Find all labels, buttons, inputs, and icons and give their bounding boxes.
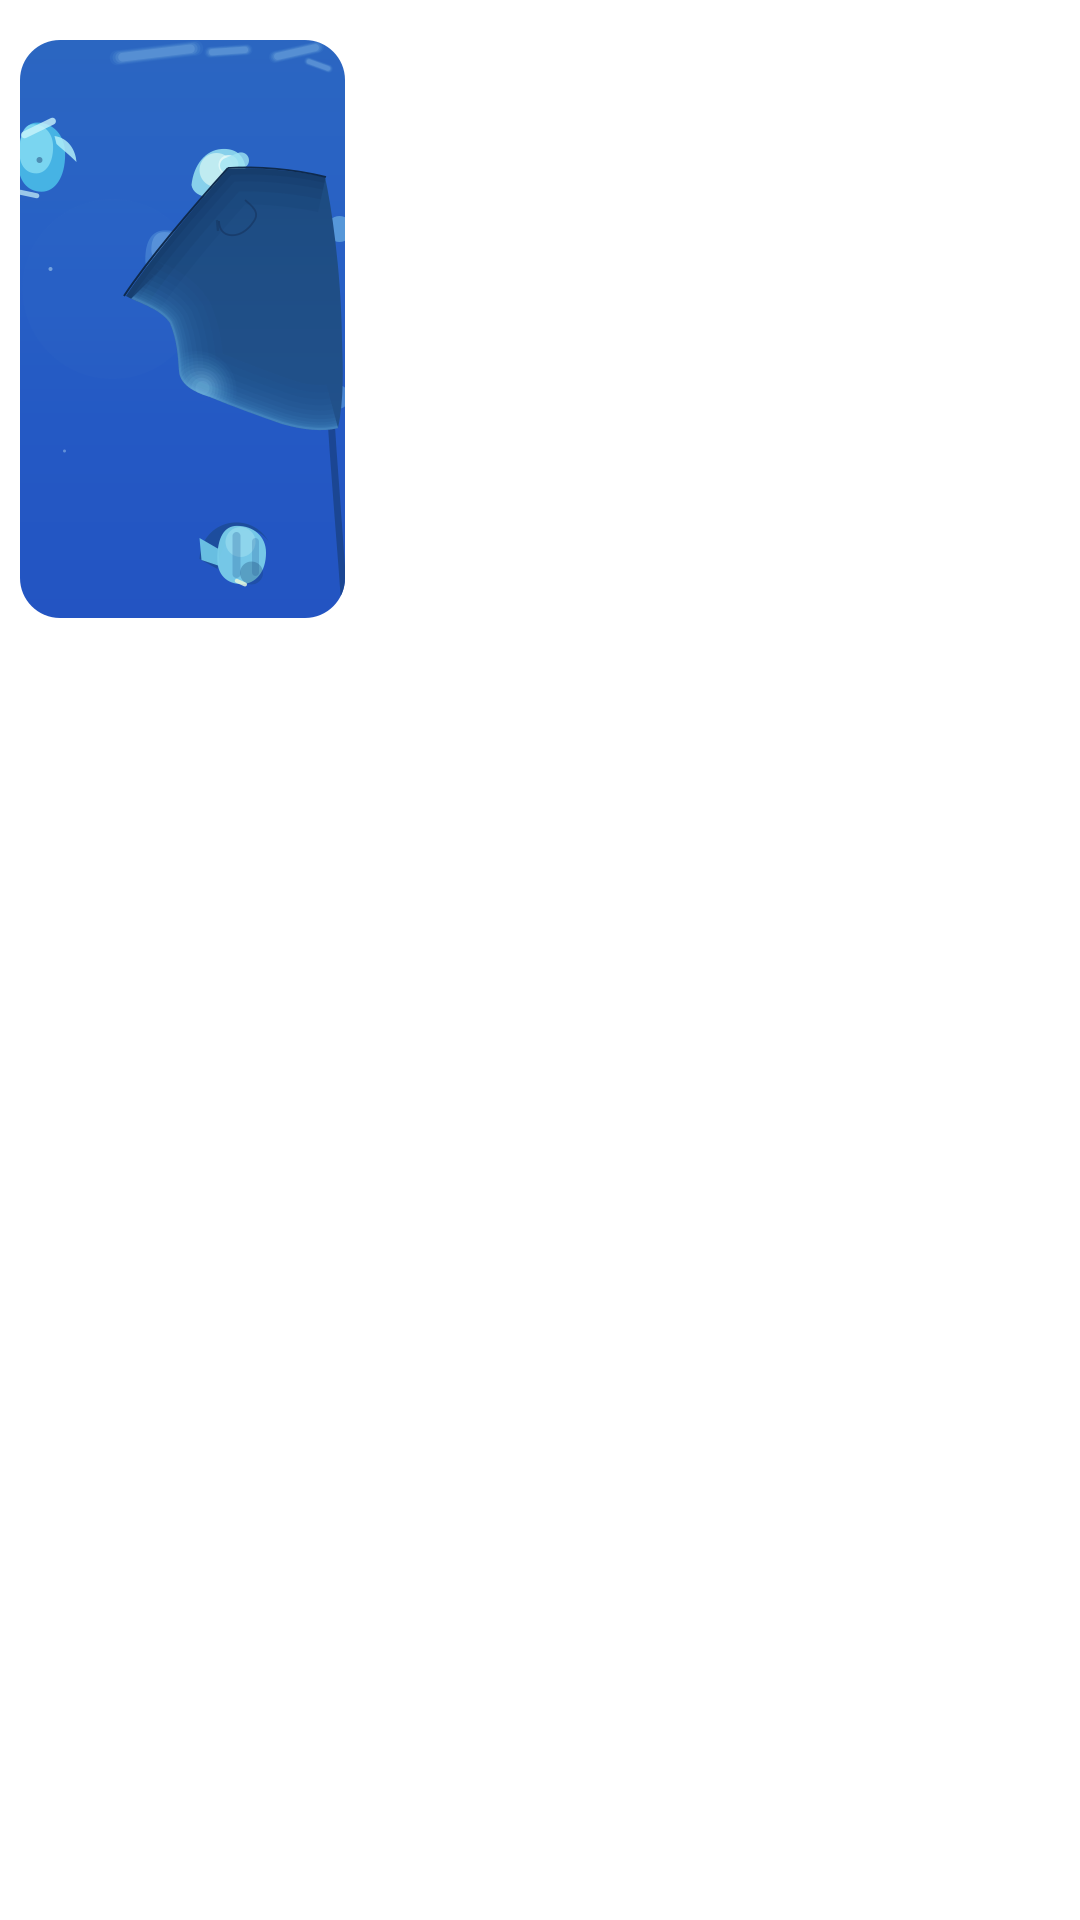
button[interactable]: Photo: [20, 40, 345, 618]
